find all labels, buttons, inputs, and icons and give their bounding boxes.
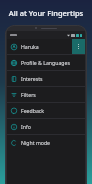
staticText: Filters	[21, 91, 36, 98]
staticText: Night mode	[21, 139, 51, 146]
staticText: All at Your Fingertips	[0, 8, 92, 18]
staticText: Feedback	[21, 107, 45, 114]
button[interactable]: Filters	[7, 87, 85, 102]
button[interactable]: Info	[7, 119, 85, 134]
button[interactable]: More options	[7, 39, 85, 54]
staticText: Haruka	[21, 43, 39, 50]
button[interactable]: Night mode	[7, 135, 85, 150]
staticText: Interests	[21, 75, 43, 82]
staticText: Profile & Languages	[21, 59, 70, 66]
button[interactable]: Profile & Languages	[7, 55, 85, 70]
button[interactable]: Feedback	[7, 103, 85, 118]
button[interactable]: More options	[78, 44, 79, 49]
staticText: Info	[21, 123, 31, 130]
button[interactable]: Interests	[7, 71, 85, 86]
